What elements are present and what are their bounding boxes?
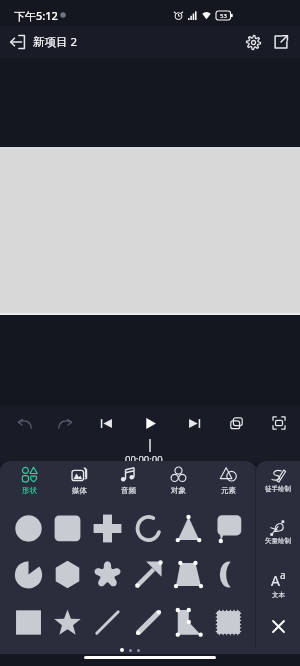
staticText: A [271, 571, 280, 590]
button[interactable]: 徒手绘制 [256, 468, 300, 498]
button[interactable]: Close [256, 613, 300, 639]
button[interactable]: Triangle [169, 509, 207, 547]
button[interactable]: Undo [12, 411, 36, 435]
button[interactable]: Skip to end [182, 411, 206, 435]
button[interactable]: Polygon [169, 603, 207, 641]
button[interactable]: 媒体 [55, 461, 103, 503]
button[interactable]: Back [5, 29, 31, 55]
staticText: 音频 [121, 486, 136, 495]
button[interactable]: Export [268, 29, 294, 55]
staticText: 对象 [171, 486, 186, 495]
button[interactable]: 音频 [104, 461, 152, 503]
button[interactable]: Skip to start [94, 411, 118, 435]
staticText: 新项目 2 [33, 34, 78, 50]
button[interactable]: Circle [9, 509, 47, 547]
button[interactable]: 元素 [204, 461, 252, 503]
button[interactable]: Flower [88, 555, 126, 593]
button[interactable]: Hexagon [48, 555, 86, 593]
staticText: 文本 [272, 591, 285, 599]
button[interactable]: Rounded square [48, 509, 86, 547]
button[interactable]: Speech bubble [209, 509, 247, 547]
button[interactable]: Loop [224, 411, 248, 435]
button[interactable]: Arc [129, 509, 167, 547]
button[interactable]: 矢量绘制 [256, 520, 300, 550]
button[interactable]: A [256, 571, 300, 601]
button[interactable]: Trapezoid [169, 555, 207, 593]
button[interactable]: Settings [240, 29, 266, 55]
staticText: 下午5:12 [14, 8, 58, 23]
button[interactable]: Play [138, 411, 162, 435]
button[interactable]: Stamp [209, 603, 247, 641]
staticText: 徒手绘制 [265, 485, 291, 493]
button[interactable]: Thin line [88, 603, 126, 641]
staticText: 00:00:00 [125, 453, 163, 466]
staticText: 矢量绘制 [265, 537, 291, 545]
button[interactable]: Star [48, 603, 86, 641]
button[interactable]: Thick line [129, 603, 167, 641]
staticText: 53 [220, 12, 227, 20]
button[interactable]: Cross [88, 509, 126, 547]
button[interactable]: 对象 [154, 461, 202, 503]
button[interactable]: Fit to screen [267, 411, 291, 435]
button[interactable]: Redo [53, 411, 77, 435]
staticText: 元素 [221, 486, 236, 495]
staticText: a [280, 568, 286, 582]
staticText: 形状 [22, 486, 37, 495]
staticText: 媒体 [72, 486, 87, 495]
button[interactable]: Pie [9, 555, 47, 593]
button[interactable]: Crescent [209, 555, 247, 593]
button[interactable]: 形状 [5, 461, 53, 503]
button[interactable]: Arrow [129, 555, 167, 593]
button[interactable]: Square [9, 603, 47, 641]
